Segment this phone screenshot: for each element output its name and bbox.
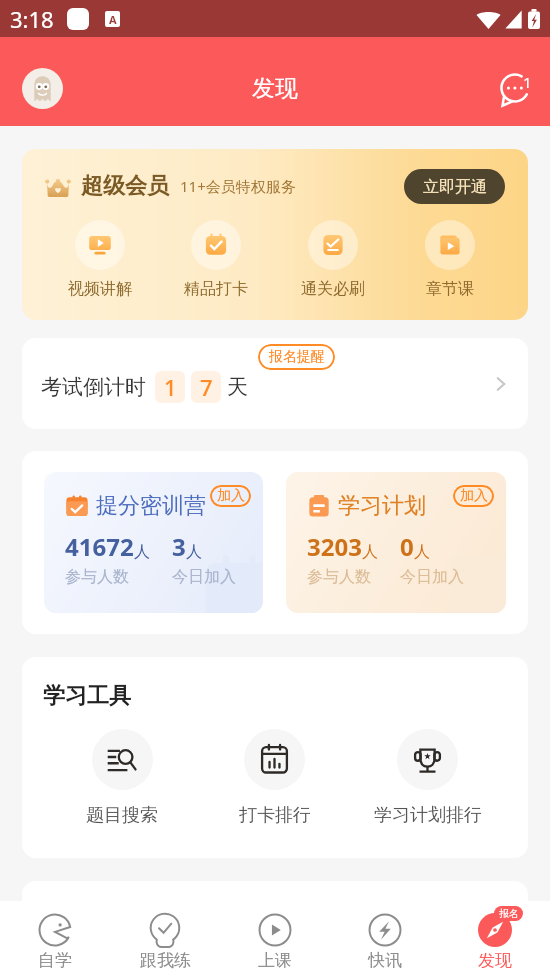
staticText: 0 <box>400 530 414 563</box>
staticText: 人 <box>362 542 378 562</box>
staticText: 报名 <box>499 907 519 920</box>
staticText: 参与人数 <box>65 567 129 587</box>
staticText: 章节课 <box>426 279 474 299</box>
staticText: 3:18 <box>10 4 54 34</box>
staticText: 学习工具 <box>43 682 131 710</box>
staticText: 3 <box>172 530 186 563</box>
staticText: 学习计划 <box>338 492 426 520</box>
button[interactable]: 报名 <box>440 901 550 979</box>
staticText: 天 <box>227 374 248 400</box>
staticText: 学习计划排行 <box>374 804 482 827</box>
staticText: 人 <box>186 542 202 562</box>
staticText: 1 <box>164 372 177 402</box>
button[interactable]: 上课 <box>220 901 330 979</box>
staticText: 考试倒计时 <box>41 374 146 400</box>
staticText: 今日加入 <box>172 567 236 587</box>
button[interactable]: 超级会员 <box>22 149 528 320</box>
staticText: 人 <box>134 542 150 562</box>
button[interactable]: 跟我练 <box>110 901 220 979</box>
staticText: 发现 <box>252 74 298 103</box>
staticText: 上课 <box>258 950 292 971</box>
button[interactable]: 学习计划 <box>286 472 506 613</box>
staticText: 3203 <box>307 530 362 563</box>
staticText: 视频讲解 <box>68 279 132 299</box>
button[interactable]: 精品打卡 <box>158 220 274 299</box>
button[interactable]: 立即开通 <box>404 169 505 204</box>
button[interactable]: 通关必刷 <box>274 220 391 299</box>
staticText: 超级会员 <box>81 172 169 200</box>
button[interactable]: 快讯 <box>330 901 440 979</box>
staticText: 今日加入 <box>400 567 464 587</box>
staticText: A <box>109 12 117 27</box>
button[interactable]: 提分密训营 <box>44 472 263 613</box>
button[interactable]: Messages <box>496 67 538 109</box>
staticText: 精品打卡 <box>184 279 248 299</box>
staticText: 加入 <box>460 487 488 505</box>
button[interactable]: 学习计划排行 <box>351 729 504 827</box>
button[interactable]: 章节课 <box>391 220 508 299</box>
staticText: 加入 <box>217 487 245 505</box>
staticText: 快讯 <box>368 950 402 971</box>
staticText: 人 <box>414 542 430 562</box>
button[interactable]: 题目搜索 <box>46 729 198 827</box>
staticText: 发现 <box>478 950 512 971</box>
staticText: 41672 <box>65 530 134 563</box>
staticText: 打卡排行 <box>239 804 311 827</box>
staticText: 自学 <box>38 950 72 971</box>
staticText: 题目搜索 <box>86 804 158 827</box>
staticText: 跟我练 <box>140 950 191 971</box>
staticText: 参与人数 <box>307 567 371 587</box>
staticText: 7 <box>200 372 213 402</box>
button[interactable]: Profile <box>22 68 63 109</box>
button[interactable]: 自学 <box>0 901 110 979</box>
button[interactable]: 考试倒计时 <box>22 338 528 429</box>
staticText: 1 <box>523 72 532 92</box>
staticText: 立即开通 <box>423 177 487 197</box>
staticText: 11+会员特权服务 <box>180 176 296 196</box>
button[interactable]: 视频讲解 <box>42 220 158 299</box>
button[interactable]: 打卡排行 <box>198 729 351 827</box>
staticText: 报名提醒 <box>269 348 325 366</box>
staticText: 通关必刷 <box>301 279 365 299</box>
staticText: 提分密训营 <box>96 492 206 520</box>
